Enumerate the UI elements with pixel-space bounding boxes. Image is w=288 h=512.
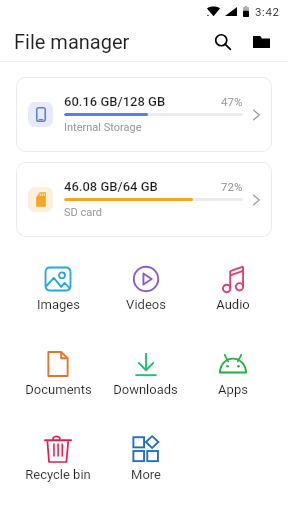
button[interactable]: Videos <box>102 264 189 312</box>
staticText: 60.16 GB/128 GB <box>64 94 221 109</box>
staticText: Apps <box>218 382 248 397</box>
staticText: Internal Storage <box>64 121 142 134</box>
button[interactable]: Documents <box>14 349 102 397</box>
staticText: File manager <box>14 30 130 53</box>
staticText: SD card <box>64 206 103 219</box>
staticText: 72% <box>221 180 243 193</box>
button[interactable]: More <box>102 434 189 482</box>
staticText: Videos <box>126 297 166 312</box>
staticText: 47% <box>221 95 243 108</box>
staticText: 46.08 GB/64 GB <box>64 179 221 194</box>
button[interactable]: Apps <box>189 349 276 397</box>
staticText: More <box>131 467 161 482</box>
button[interactable]: Audio <box>189 264 276 312</box>
staticText: Images <box>37 297 80 312</box>
button[interactable]: 46.08 GB/64 GB <box>16 162 272 237</box>
button[interactable]: Folder <box>243 24 279 60</box>
staticText: Recycle bin <box>25 467 91 482</box>
staticText: 3:42 <box>255 5 280 18</box>
button[interactable]: 60.16 GB/128 GB <box>16 77 272 152</box>
button[interactable]: Downloads <box>102 349 189 397</box>
button[interactable]: Search <box>205 24 241 60</box>
staticText: Downloads <box>113 382 178 397</box>
button[interactable]: Recycle bin <box>14 434 102 482</box>
button[interactable]: Images <box>14 264 102 312</box>
staticText: Documents <box>25 382 92 397</box>
staticText: Audio <box>216 297 250 312</box>
